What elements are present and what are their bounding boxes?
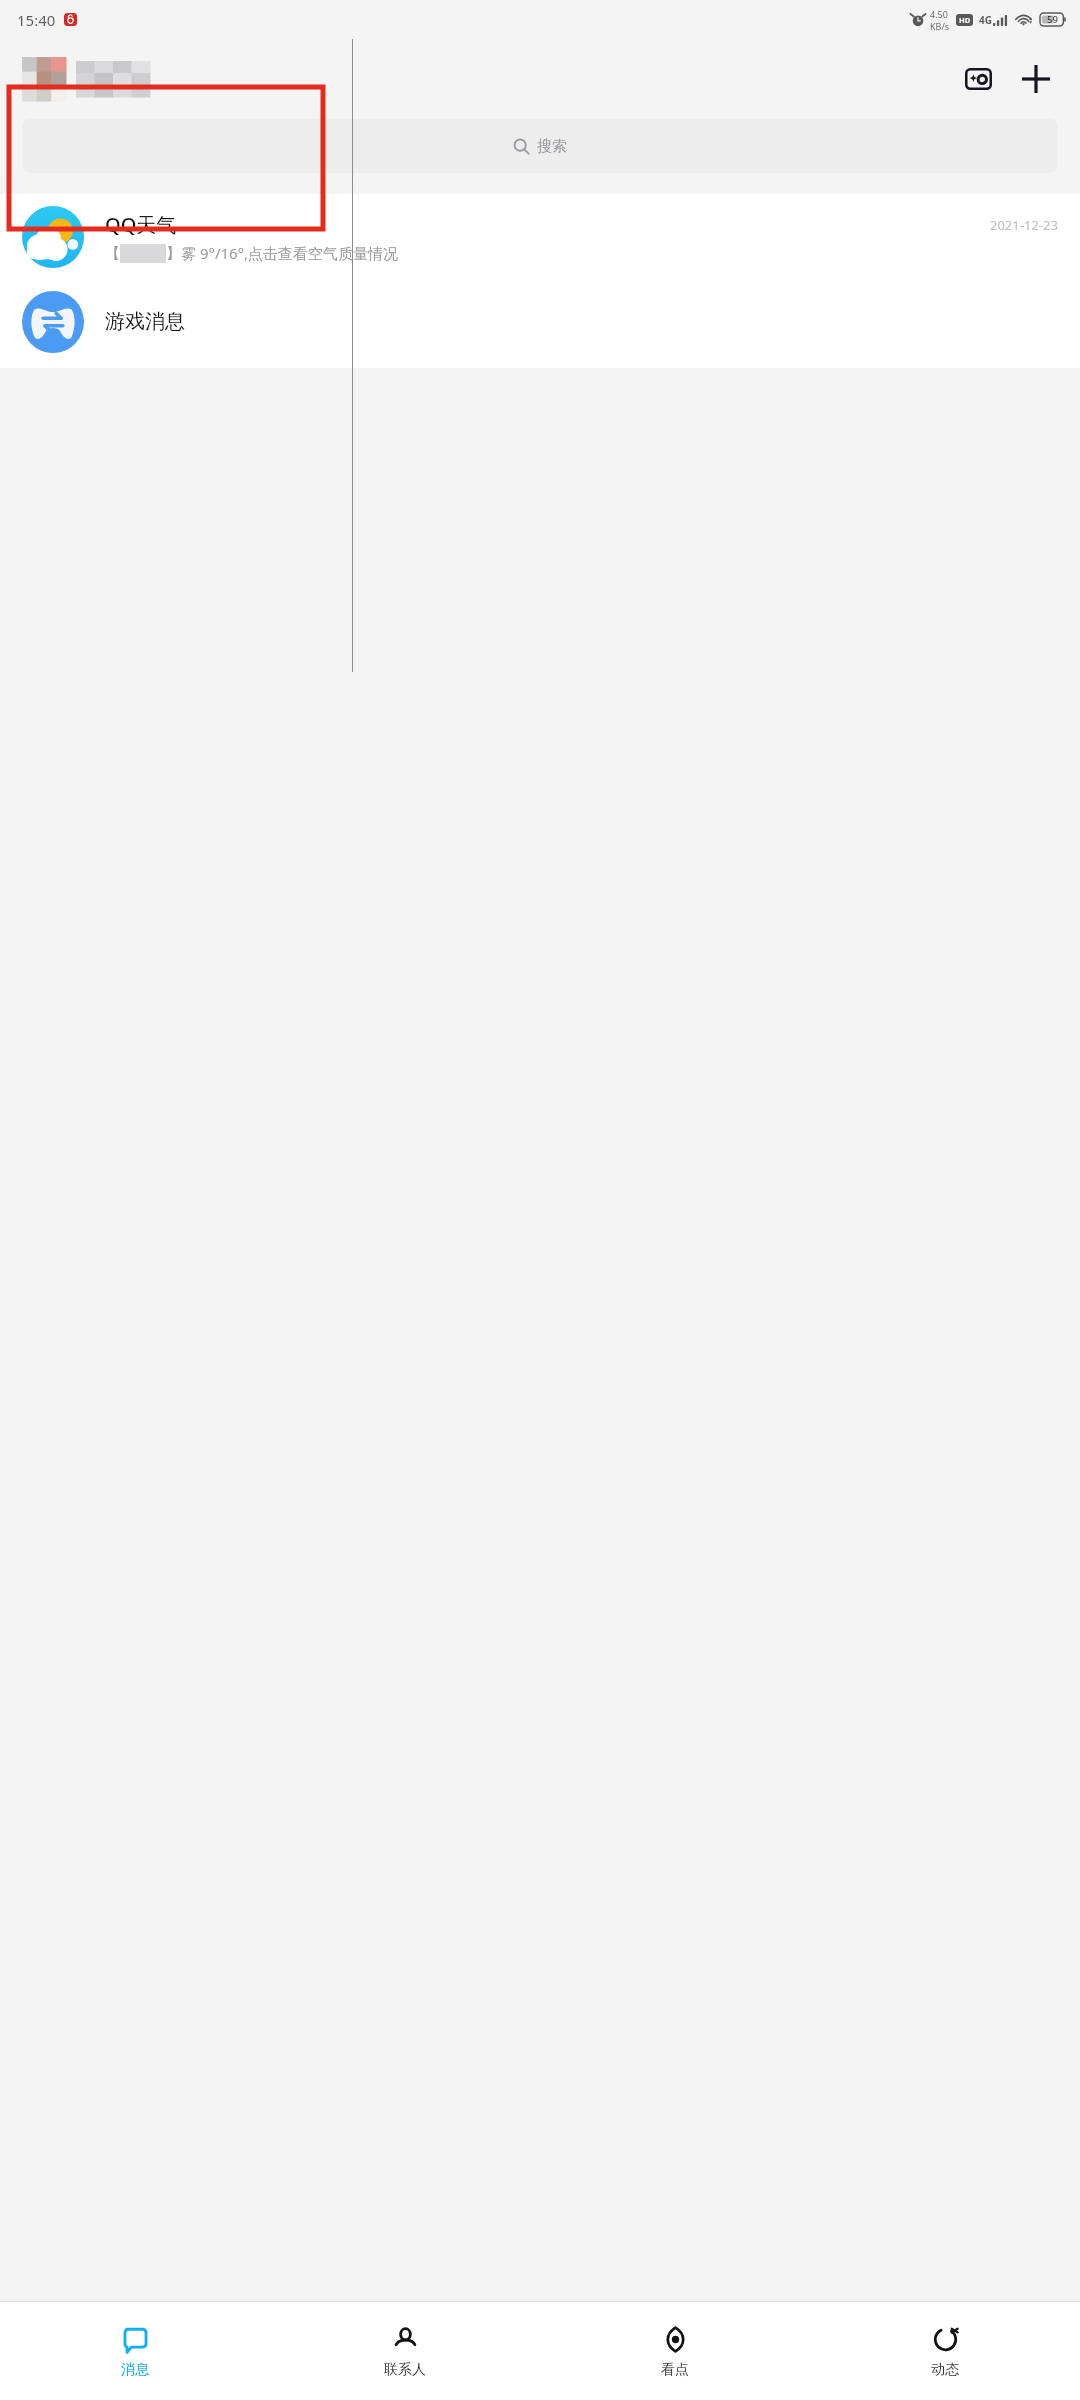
button[interactable]: 动态: [810, 2302, 1080, 2400]
button[interactable]: Add: [1014, 57, 1058, 101]
staticText: 联系人: [384, 2361, 426, 2379]
button[interactable]: 消息: [0, 2302, 270, 2400]
button[interactable]: [22, 57, 158, 101]
staticText: 】: [166, 244, 181, 263]
button[interactable]: Scan / Camera: [956, 57, 1000, 101]
staticText: QQ天气: [105, 211, 177, 238]
button[interactable]: QQ天气: [0, 194, 1080, 279]
staticText: 4.50: [930, 8, 948, 20]
button[interactable]: 看点: [540, 2302, 810, 2400]
staticText: 雾 9°/16°,点击查看空气质量情况: [181, 243, 399, 263]
staticText: 2021-12-23: [990, 216, 1058, 234]
staticText: 15:40: [17, 10, 56, 30]
staticText: 动态: [931, 2361, 959, 2379]
staticText: 消息: [121, 2361, 149, 2379]
staticText: KB/s: [930, 20, 950, 32]
staticText: 搜索: [537, 137, 567, 156]
button[interactable]: 游戏消息: [0, 279, 1080, 364]
staticText: 【: [105, 244, 120, 263]
staticText: HD: [959, 15, 971, 25]
button[interactable]: 联系人: [270, 2302, 540, 2400]
staticText: 4G: [979, 13, 992, 27]
staticText: 看点: [661, 2361, 689, 2379]
button[interactable]: 搜索: [22, 119, 1058, 173]
staticText: 游戏消息: [105, 309, 185, 334]
staticText: 59: [1047, 13, 1058, 26]
